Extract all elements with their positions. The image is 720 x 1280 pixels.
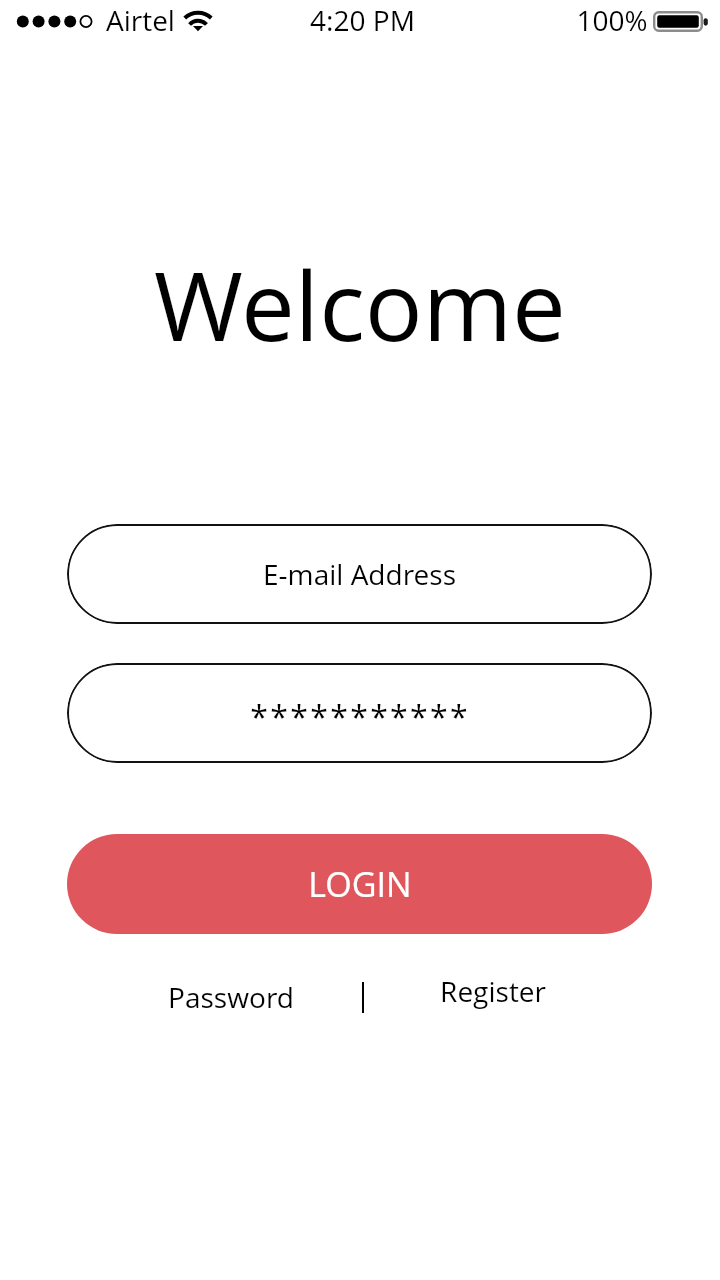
button[interactable]: Password — [148, 965, 314, 1025]
button[interactable]: Register — [420, 959, 566, 1019]
button[interactable]: * * * * * * * * * * * — [67, 663, 652, 763]
other: Wi-Fi — [183, 9, 213, 32]
staticText: 100% — [576, 1, 648, 39]
staticText: E-mail Address — [263, 555, 456, 593]
button[interactable]: E-mail Address — [67, 524, 652, 624]
staticText: LOGIN — [308, 861, 412, 907]
other: Battery full — [653, 11, 709, 33]
staticText: Register — [440, 972, 546, 1010]
staticText: Airtel — [106, 1, 175, 39]
staticText: * * * * * * * * * * * — [250, 695, 465, 739]
button[interactable]: LOGIN — [67, 834, 652, 934]
other: Signal strength — [16, 14, 94, 29]
staticText: 4:20 PM — [310, 1, 415, 39]
staticText: Password — [168, 978, 294, 1016]
staticText: Welcome — [0, 238, 720, 369]
